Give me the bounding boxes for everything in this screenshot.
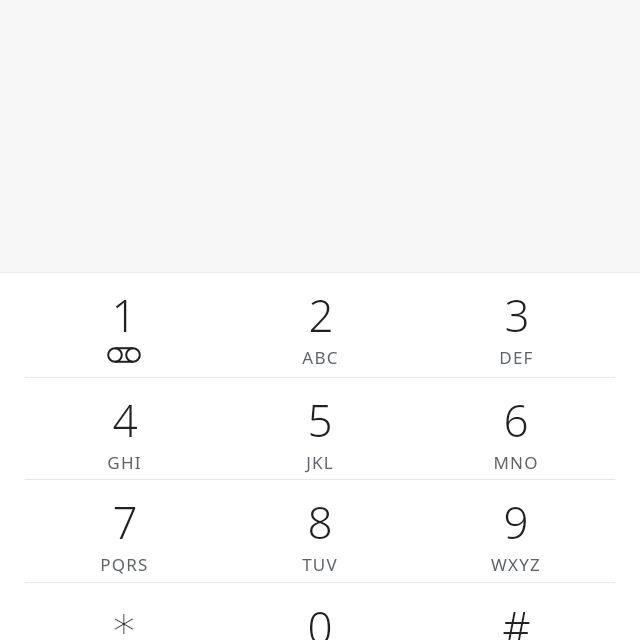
- button[interactable]: 5: [222, 378, 418, 479]
- button[interactable]: 9: [418, 480, 614, 582]
- staticText: 6: [503, 390, 529, 450]
- other: Voicemail: [107, 347, 141, 363]
- staticText: DEF: [499, 346, 534, 369]
- staticText: 1: [111, 285, 137, 345]
- button[interactable]: 2: [222, 273, 418, 377]
- button[interactable]: ∗: [26, 583, 222, 640]
- staticText: ABC: [302, 346, 339, 369]
- staticText: 8: [307, 492, 333, 552]
- staticText: 5: [307, 390, 333, 450]
- staticText: 7: [112, 492, 138, 552]
- button[interactable]: #: [418, 583, 614, 640]
- staticText: 2: [308, 285, 334, 345]
- staticText: PQRS: [100, 553, 149, 576]
- button[interactable]: 1 voicemail: [26, 273, 222, 377]
- staticText: 9: [503, 492, 529, 552]
- button[interactable]: 7: [26, 480, 222, 582]
- button[interactable]: 0: [222, 583, 418, 640]
- button[interactable]: 6: [418, 378, 614, 479]
- button[interactable]: 4: [26, 378, 222, 479]
- staticText: ∗: [110, 597, 138, 640]
- staticText: #: [502, 597, 531, 640]
- staticText: 0: [307, 597, 333, 640]
- staticText: MNO: [493, 451, 539, 474]
- staticText: GHI: [107, 451, 142, 474]
- staticText: TUV: [302, 553, 338, 576]
- staticText: JKL: [306, 451, 334, 474]
- staticText: WXYZ: [491, 553, 541, 576]
- staticText: 3: [504, 285, 530, 345]
- button[interactable]: 8: [222, 480, 418, 582]
- button[interactable]: 3: [418, 273, 614, 377]
- staticText: 4: [112, 390, 138, 450]
